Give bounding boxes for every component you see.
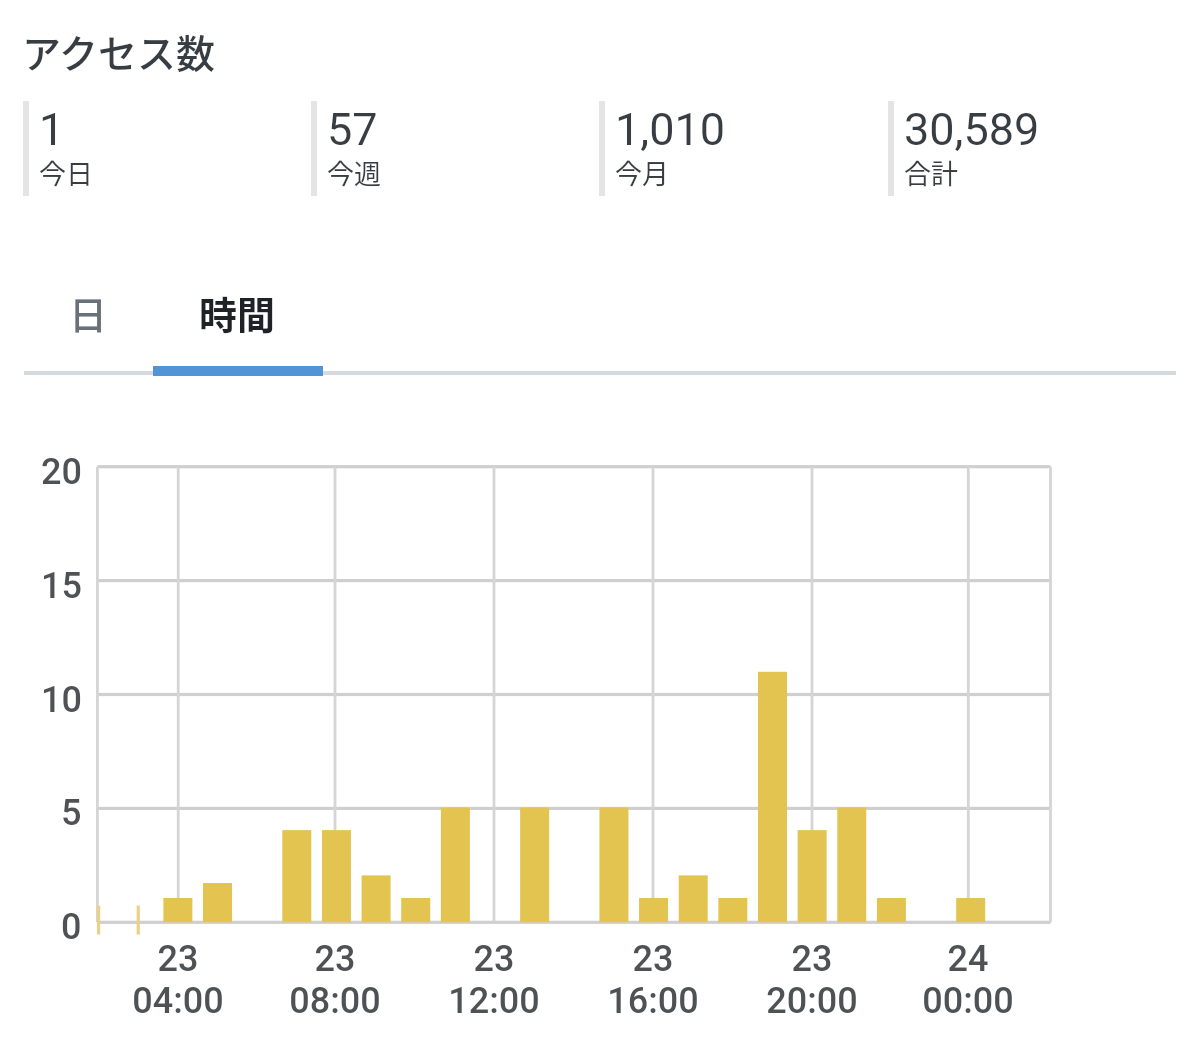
staticText: 1 xyxy=(39,103,65,156)
staticText: 30,589 xyxy=(904,103,1040,156)
staticText: 0 xyxy=(61,906,82,948)
button[interactable]: 時間 xyxy=(153,277,322,347)
staticText: 合計 xyxy=(904,153,958,192)
staticText: 時間 xyxy=(199,285,276,340)
staticText: 23 08:00 xyxy=(289,938,381,1022)
staticText: 23 16:00 xyxy=(607,938,699,1022)
staticText: 1,010 xyxy=(615,103,726,156)
button[interactable]: 1 xyxy=(23,101,311,196)
button[interactable]: 1,010 xyxy=(599,101,888,196)
staticText: アクセス数 xyxy=(22,23,216,79)
staticText: 今月 xyxy=(615,153,669,192)
staticText: 日 xyxy=(69,285,108,340)
button[interactable]: 日 xyxy=(24,277,153,347)
staticText: 23 04:00 xyxy=(132,938,224,1022)
button[interactable]: 30,589 xyxy=(888,101,1177,196)
staticText: 57 xyxy=(327,103,378,156)
staticText: 5 xyxy=(61,792,82,834)
staticText: 20 xyxy=(41,451,82,493)
staticText: 10 xyxy=(41,679,82,721)
staticText: 今日 xyxy=(39,153,93,192)
button[interactable]: 57 xyxy=(311,101,599,196)
staticText: 今週 xyxy=(327,153,381,192)
staticText: 23 12:00 xyxy=(448,938,540,1022)
staticText: 24 00:00 xyxy=(922,938,1014,1022)
staticText: 23 20:00 xyxy=(766,938,858,1022)
staticText: 15 xyxy=(41,565,82,607)
